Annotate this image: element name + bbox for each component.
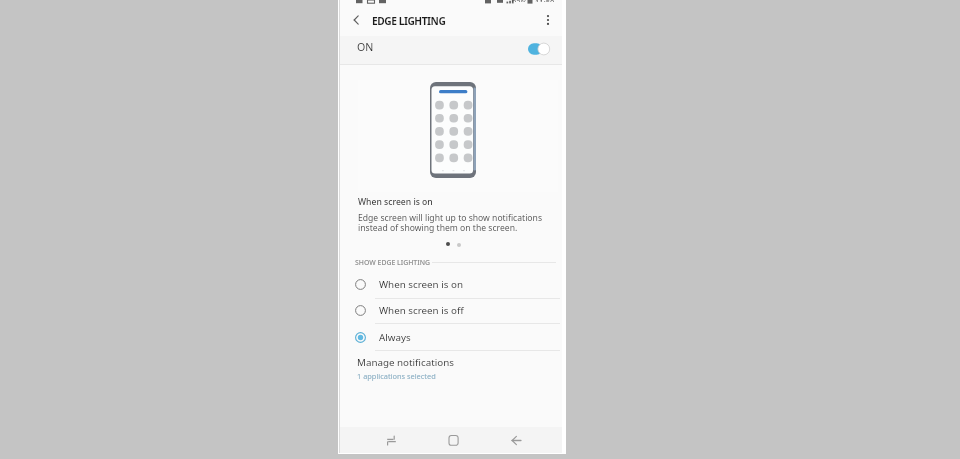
staticText: Manage notifications xyxy=(357,356,454,369)
staticText: When screen is off xyxy=(379,304,464,317)
staticText: EDGE LIGHTING xyxy=(372,14,446,28)
staticText: When screen is on xyxy=(358,196,433,208)
staticText: 11:50 xyxy=(535,0,555,2)
staticText: Edge screen will light up to show notifi… xyxy=(358,212,543,233)
staticText: 1 applications selected xyxy=(357,371,436,381)
button[interactable]: More options xyxy=(539,11,557,29)
staticText: SHOW EDGE LIGHTING xyxy=(355,258,431,267)
staticText: ON xyxy=(357,40,374,54)
button[interactable]: Always xyxy=(340,324,562,350)
button[interactable]: Back xyxy=(501,427,531,453)
button[interactable]: Navigate up xyxy=(346,11,364,29)
button[interactable]: Recents xyxy=(376,427,406,453)
button[interactable]: Home xyxy=(438,427,468,453)
staticText: When screen is on xyxy=(379,278,463,291)
button[interactable]: ON xyxy=(340,36,562,64)
button[interactable]: When screen is off xyxy=(340,297,562,323)
staticText: Always xyxy=(379,331,411,344)
button[interactable]: When screen is on xyxy=(340,271,562,297)
button[interactable]: Manage notifications xyxy=(340,352,562,384)
staticText: 92% xyxy=(512,0,527,2)
